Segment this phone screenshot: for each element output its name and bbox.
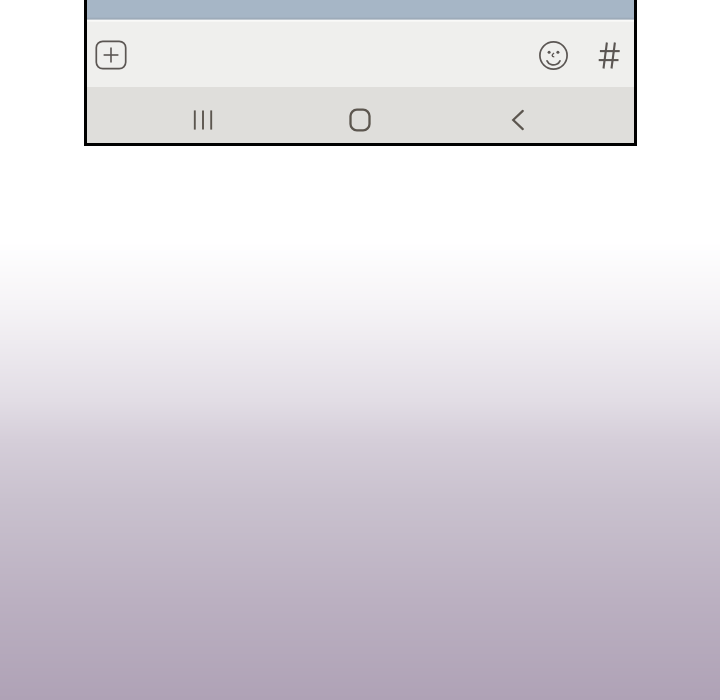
- button[interactable]: Home: [340, 100, 379, 139]
- button[interactable]: Add attachment: [96, 41, 126, 71]
- button[interactable]: Hashtag: [594, 40, 625, 71]
- button[interactable]: Emoji: [538, 40, 569, 71]
- button[interactable]: Back: [498, 100, 537, 139]
- button[interactable]: Recent apps: [183, 100, 222, 139]
